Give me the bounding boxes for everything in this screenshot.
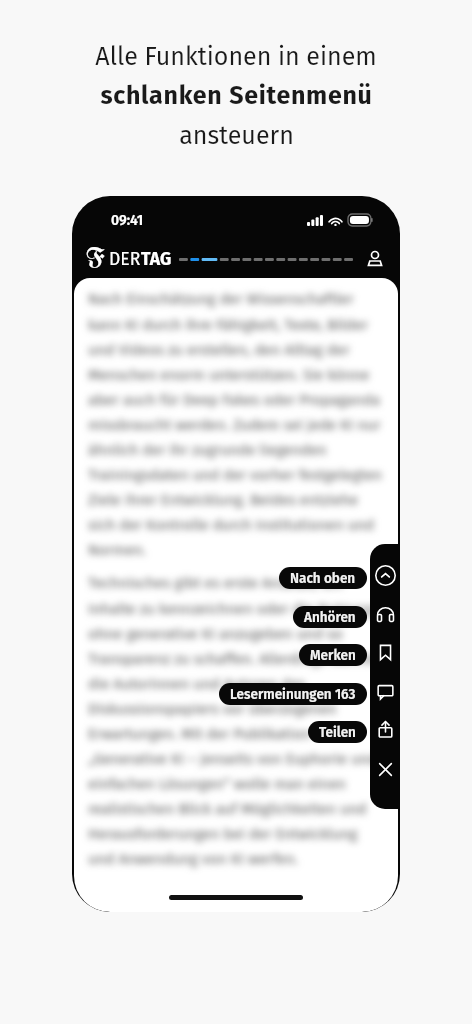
button[interactable]: Lesermeinungen 163 bbox=[219, 683, 367, 705]
staticText: ansteuern bbox=[179, 121, 294, 151]
button[interactable]: Merken bbox=[370, 633, 400, 671]
staticText: Anhören bbox=[304, 609, 356, 625]
button[interactable]: Account bbox=[365, 249, 385, 269]
button[interactable]: Lesermeinungen 163 bbox=[370, 672, 400, 710]
button[interactable]: Teilen bbox=[370, 710, 400, 748]
staticText: Nach oben bbox=[290, 570, 356, 586]
staticText: Lesermeinungen 163 bbox=[230, 686, 356, 702]
staticText: DER bbox=[109, 249, 141, 270]
staticText: schlanken Seitenmenü bbox=[100, 81, 373, 111]
staticText: Nach Einschätzung der Wissenschaftler ka… bbox=[88, 290, 386, 559]
button[interactable]: Teilen bbox=[308, 721, 367, 743]
staticText: Teilen bbox=[319, 724, 356, 740]
staticText: 09:41 bbox=[111, 212, 144, 229]
button[interactable]: Nach oben bbox=[279, 567, 367, 589]
button[interactable]: Schließen bbox=[370, 750, 400, 788]
button[interactable]: Anhören bbox=[293, 606, 367, 628]
staticText: Technisches gibt es erste Ansätze, um In… bbox=[88, 574, 386, 868]
button[interactable]: Anhören bbox=[370, 595, 400, 633]
staticText: F bbox=[86, 245, 105, 271]
staticText: Merken bbox=[310, 647, 356, 663]
staticText: TAG bbox=[141, 249, 172, 270]
staticText: Alle Funktionen in einem bbox=[95, 42, 377, 72]
button[interactable]: Nach oben bbox=[370, 556, 400, 594]
button[interactable]: Merken bbox=[299, 644, 367, 666]
